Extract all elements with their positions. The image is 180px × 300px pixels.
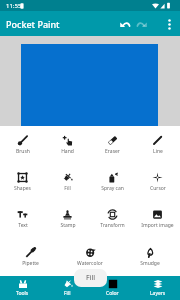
staticText: Spray can [101,185,124,192]
staticText: Brush [16,148,30,155]
button[interactable]: Cursor [135,163,180,200]
staticText: Pipette [22,260,39,267]
button[interactable]: Tools [0,276,45,300]
staticText: Fill [64,290,71,297]
button[interactable]: Undo [115,13,135,35]
button[interactable]: Line [135,126,180,163]
button[interactable]: Import image [135,200,180,238]
button[interactable]: Fill [45,163,90,200]
button[interactable]: Pipette [0,238,60,276]
staticText: Transform [100,222,125,229]
staticText: Smudge [140,260,160,267]
staticText: Shapes [14,185,31,192]
button[interactable]: Spray can [90,163,135,200]
button[interactable]: Shapes [0,163,45,200]
button[interactable]: Smudge [120,238,180,276]
staticText: Line [153,148,163,155]
staticText: Tools [16,290,29,297]
button[interactable]: Eraser [90,126,135,163]
button[interactable]: Layers [135,276,180,300]
button[interactable]: Hand [45,126,90,163]
staticText: Layers [150,290,166,297]
button[interactable]: More options [159,13,179,35]
button[interactable]: Redo [132,13,152,35]
staticText: Stamp [60,222,76,229]
staticText: Pocket Paint [6,18,60,30]
staticText: Eraser [105,148,120,155]
staticText: Hand [61,148,74,155]
button[interactable]: Fill [45,276,90,300]
button[interactable]: Brush [0,126,45,163]
button[interactable]: Color [90,276,135,300]
staticText: Fill [64,185,71,192]
staticText: Text [18,222,28,229]
button[interactable]: Transform [90,200,135,238]
button[interactable]: Text [0,200,45,238]
staticText: 11:55 [6,2,22,10]
staticText: Import image [141,222,174,229]
staticText: Cursor [150,185,166,192]
button[interactable]: Stamp [45,200,90,238]
staticText: Color [106,290,119,297]
staticText: Fill [86,273,96,283]
staticText: Watercolor [77,260,103,267]
button[interactable]: Watercolor [60,238,120,276]
